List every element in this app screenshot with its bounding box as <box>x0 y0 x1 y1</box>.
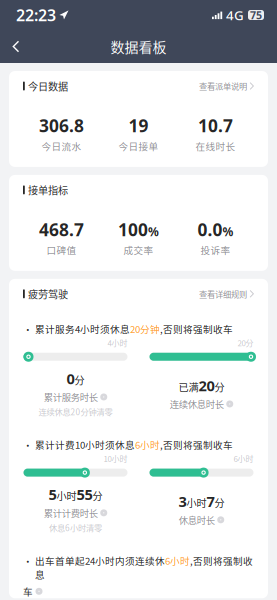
staticText: 小时 <box>56 488 76 503</box>
staticText: 0 <box>66 369 74 388</box>
staticText: 4G <box>226 6 244 24</box>
staticText: • <box>23 322 33 336</box>
staticText: 分 <box>214 495 224 510</box>
staticText: 0.0 <box>197 218 222 241</box>
staticText: 小时 <box>186 495 206 510</box>
staticText: 在线时长 <box>195 139 235 153</box>
staticText: 100 <box>118 218 148 241</box>
staticText: 10小时 <box>103 453 127 464</box>
staticText: • <box>23 438 33 452</box>
staticText: 6小时 <box>233 453 253 464</box>
staticText: 累计服务4小时须休息 <box>35 322 130 336</box>
staticText: • <box>23 554 33 567</box>
staticText: 投诉率 <box>200 243 230 257</box>
staticText: 休息6小时清零 <box>49 522 102 534</box>
staticText: 已满 <box>178 379 198 394</box>
button[interactable]: 返回 <box>0 30 34 62</box>
staticText: 分 <box>92 488 102 503</box>
staticText: 休息时长 <box>179 513 215 527</box>
staticText: 连续休息时长 <box>170 397 224 411</box>
staticText: 22:23 <box>16 4 56 26</box>
staticText: 4小时 <box>107 337 127 348</box>
staticText: 出车首单起24小时内须连续休息 <box>35 554 165 581</box>
staticText: 接单指标 <box>28 183 68 197</box>
staticText: 车 <box>23 584 33 598</box>
staticText: 分 <box>74 372 84 387</box>
staticText: ,否则将强制收车 <box>160 438 233 452</box>
staticText: 连续休息20分钟清零 <box>38 406 112 418</box>
staticText: 查看详细规则 <box>199 288 247 300</box>
staticText: 数据看板 <box>110 36 166 57</box>
staticText: 306.8 <box>39 114 84 137</box>
button[interactable]: 查看详细规则 <box>199 288 254 300</box>
staticText: 6小时 <box>165 554 190 567</box>
staticText: ,否则将强制收车 <box>160 322 233 336</box>
staticText: 20分钟 <box>130 322 160 336</box>
staticText: 分 <box>214 379 224 394</box>
staticText: 20 <box>198 376 214 395</box>
staticText: 7 <box>206 492 214 511</box>
staticText: 今日接单 <box>118 139 158 153</box>
staticText: 今日数据 <box>28 79 68 93</box>
staticText: 查看派单说明 <box>199 80 247 92</box>
staticText: 累计计费10小时须休息 <box>35 438 135 452</box>
staticText: 口碑值 <box>46 243 76 257</box>
staticText: 468.7 <box>39 218 84 241</box>
button[interactable]: 查看派单说明 <box>199 80 254 92</box>
staticText: % <box>222 223 233 239</box>
staticText: ,否则将强制收 <box>190 554 253 567</box>
staticText: 20分 <box>237 337 253 348</box>
staticText: 19 <box>128 114 148 137</box>
staticText: 55 <box>76 485 92 504</box>
staticText: 今日流水 <box>41 139 81 153</box>
staticText: % <box>148 223 159 239</box>
staticText: 5 <box>48 485 56 504</box>
staticText: 3 <box>178 492 186 511</box>
staticText: 累计计费时长 <box>44 506 98 520</box>
staticText: 10.7 <box>198 114 233 137</box>
staticText: 累计服务时长 <box>44 390 98 404</box>
staticText: 6小时 <box>135 438 160 452</box>
staticText: 疲劳驾驶 <box>28 286 68 301</box>
staticText: 成交率 <box>123 243 153 257</box>
staticText: 75 <box>250 8 262 22</box>
